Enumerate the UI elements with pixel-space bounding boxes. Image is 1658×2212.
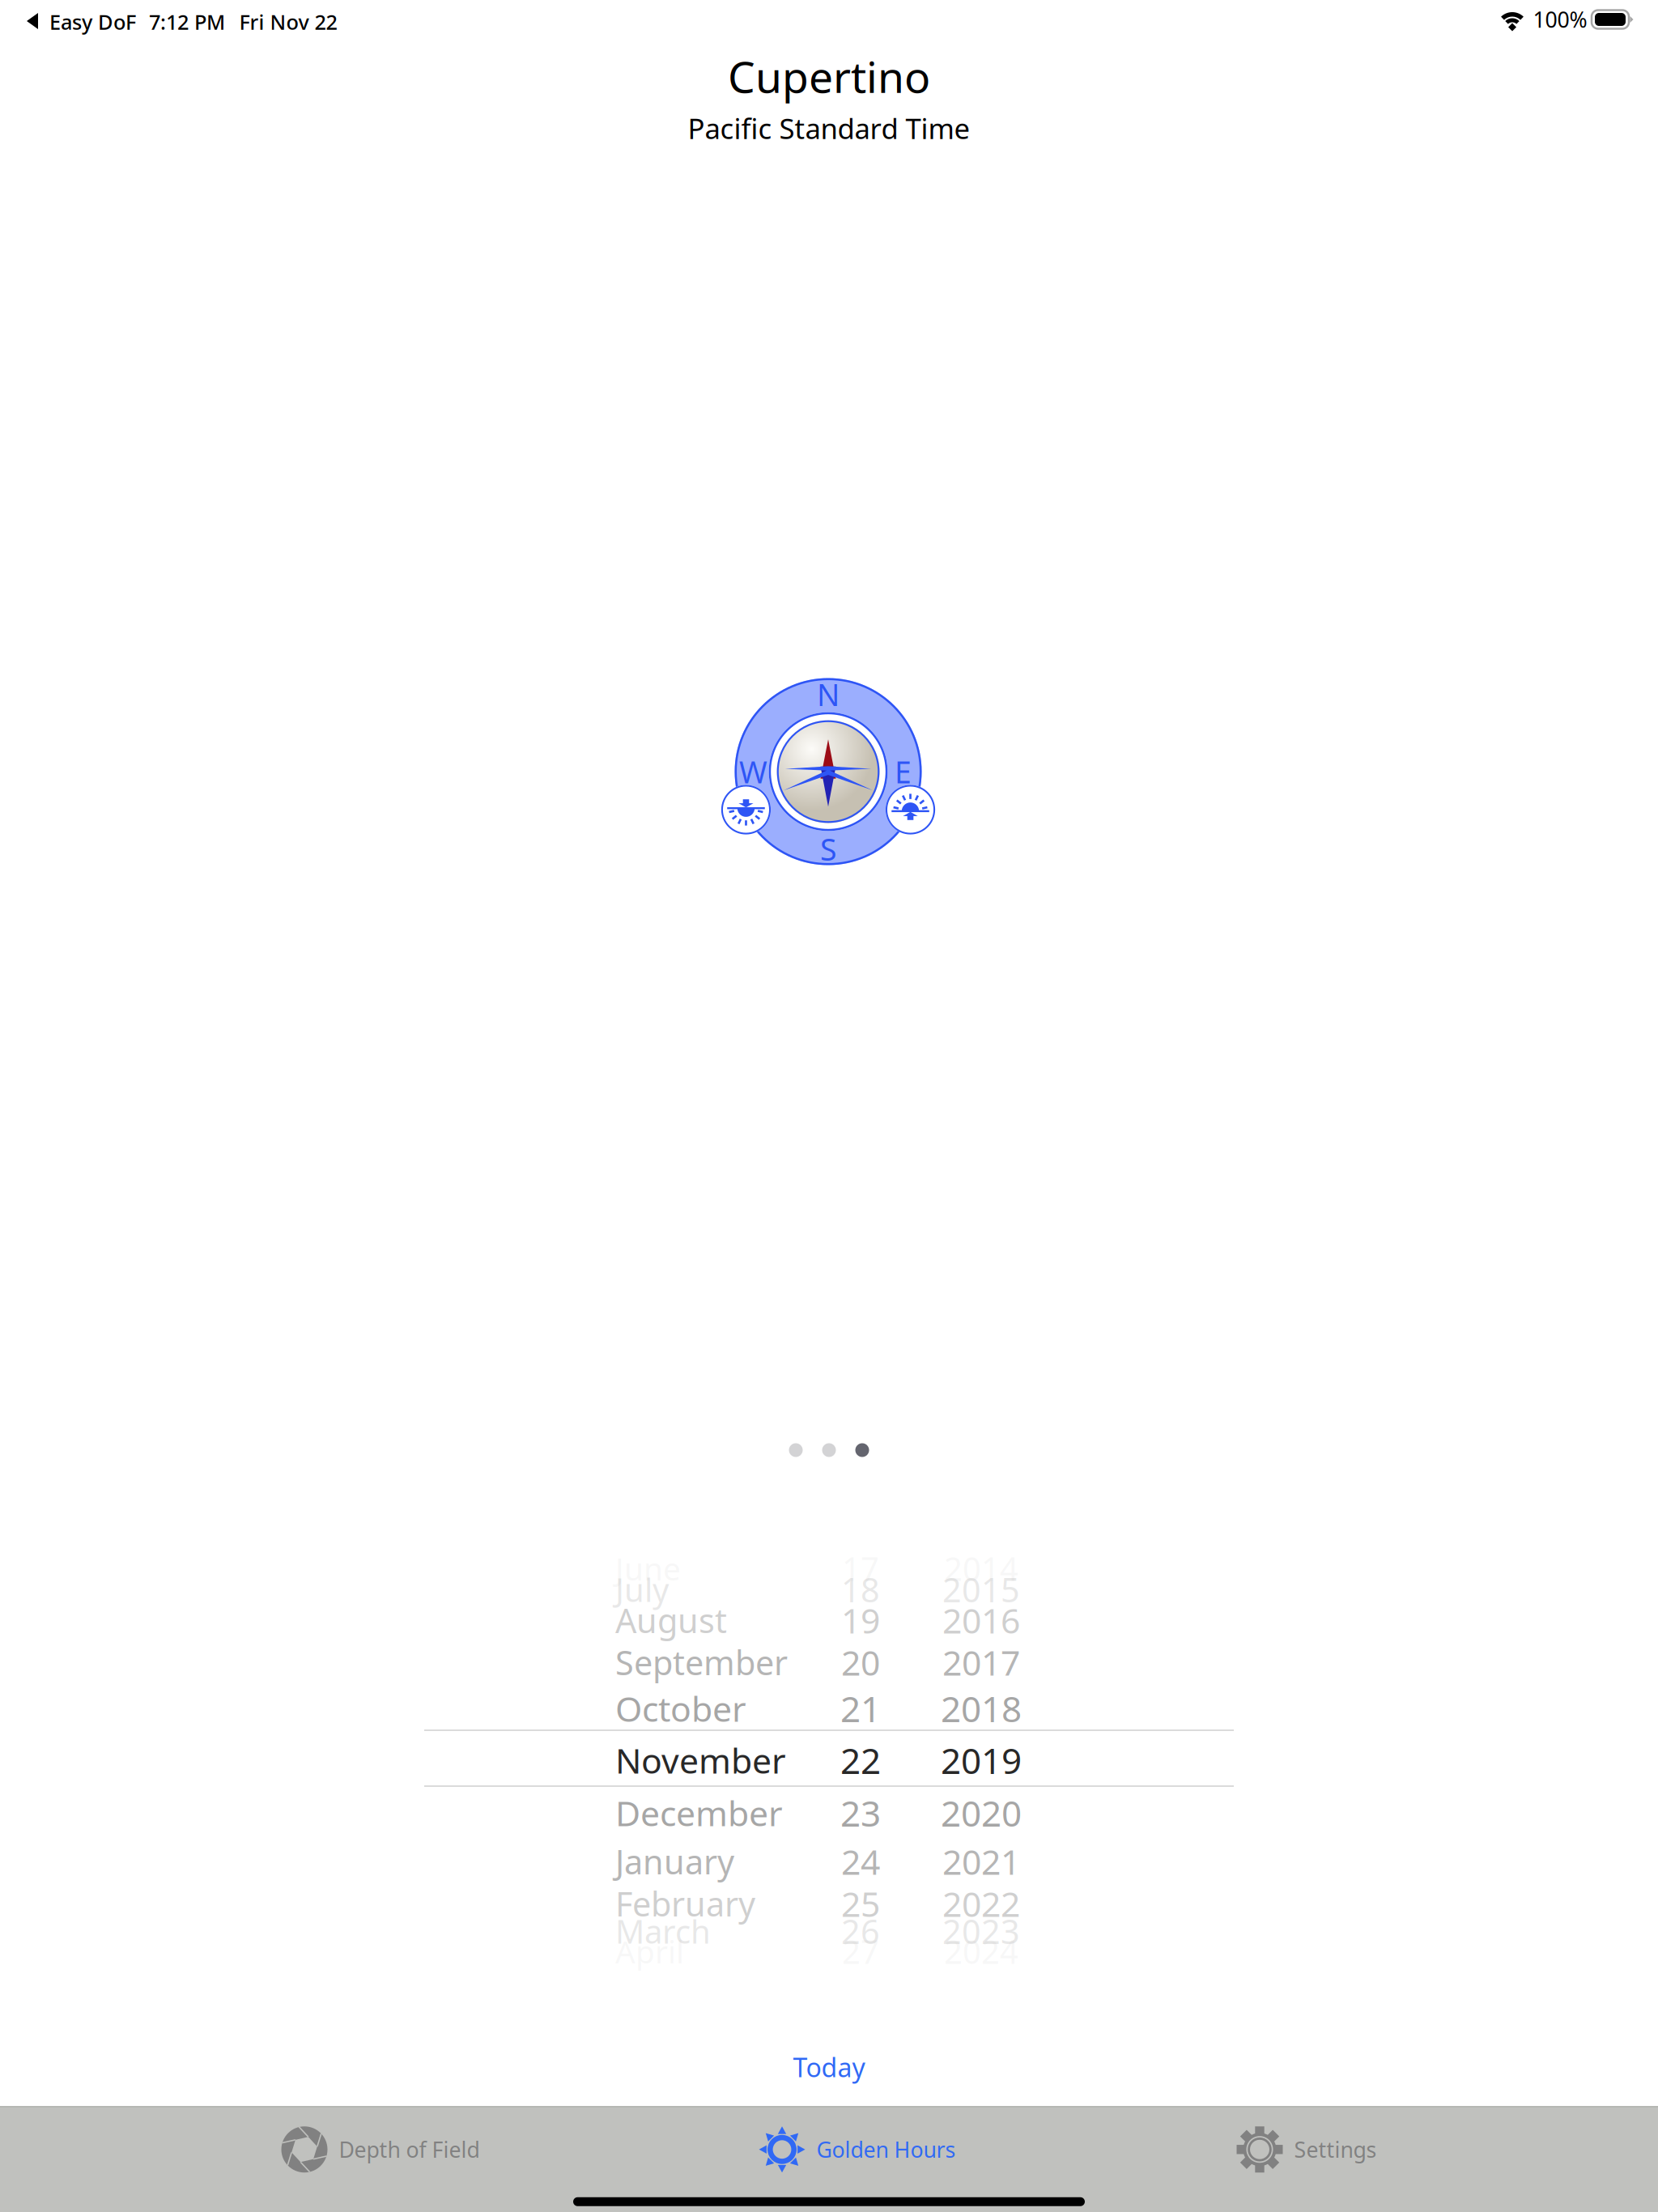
button[interactable]: Today xyxy=(748,2043,910,2091)
button[interactable]: Golden Hours xyxy=(759,2113,956,2186)
button[interactable]: Year, 2019 xyxy=(908,1550,1054,1971)
staticText: November xyxy=(615,1737,786,1783)
staticText: August xyxy=(615,1598,727,1642)
staticText: Pacific Standard Time xyxy=(688,110,970,147)
staticText: 2018 xyxy=(941,1685,1022,1732)
staticText: June xyxy=(615,1548,681,1589)
staticText: February xyxy=(615,1881,755,1926)
staticText: 23 xyxy=(840,1789,881,1836)
button[interactable]: Month, November xyxy=(615,1550,882,1971)
staticText: 18 xyxy=(841,1567,880,1612)
staticText: 2022 xyxy=(942,1881,1020,1927)
staticText: 20 xyxy=(841,1639,880,1685)
staticText: 2020 xyxy=(941,1789,1022,1836)
staticText: Easy DoF xyxy=(49,8,136,35)
staticText: 7:12 PM xyxy=(149,8,225,35)
button[interactable]: Day, 22 xyxy=(812,1550,909,1971)
staticText: 2023 xyxy=(942,1909,1020,1953)
staticText: 2019 xyxy=(941,1737,1022,1784)
button[interactable]: Depth of Field xyxy=(281,2113,480,2186)
staticText: December xyxy=(615,1790,783,1836)
button[interactable]: Easy DoF xyxy=(26,6,136,38)
staticText: 2017 xyxy=(942,1639,1020,1685)
staticText: 2024 xyxy=(944,1930,1018,1973)
staticText: 24 xyxy=(841,1839,880,1884)
staticText: N xyxy=(817,674,840,714)
staticText: Fri Nov 22 xyxy=(239,8,337,35)
staticText: 19 xyxy=(841,1597,880,1643)
staticText: 2015 xyxy=(942,1567,1020,1612)
staticText: 100% xyxy=(1533,5,1587,34)
staticText: July xyxy=(615,1568,669,1611)
button[interactable]: Sunrise xyxy=(886,785,935,834)
staticText: Cupertino xyxy=(728,47,930,105)
staticText: 2016 xyxy=(942,1597,1020,1643)
staticText: E xyxy=(894,752,911,792)
staticText: 22 xyxy=(840,1737,881,1784)
staticText: S xyxy=(820,829,836,869)
button[interactable]: Sunset xyxy=(721,785,771,834)
staticText: March xyxy=(615,1910,711,1953)
staticText: October xyxy=(615,1685,746,1731)
staticText: 26 xyxy=(841,1909,880,1953)
staticText: Golden Hours xyxy=(816,2135,956,2164)
staticText: January xyxy=(615,1839,734,1884)
staticText: 17 xyxy=(842,1547,879,1590)
staticText: Today xyxy=(793,2050,865,2084)
button[interactable]: Settings xyxy=(1237,2113,1377,2186)
staticText: 25 xyxy=(841,1881,880,1927)
staticText: September xyxy=(615,1640,788,1685)
staticText: 27 xyxy=(842,1930,879,1973)
staticText: W xyxy=(739,752,768,792)
staticText: 2021 xyxy=(942,1839,1020,1884)
staticText: 2014 xyxy=(944,1547,1018,1590)
staticText: Depth of Field xyxy=(339,2135,480,2164)
staticText: Settings xyxy=(1294,2135,1377,2164)
staticText: April xyxy=(615,1930,684,1972)
button[interactable]: Page 3 of 3 xyxy=(764,1436,894,1464)
staticText: 21 xyxy=(840,1685,881,1732)
